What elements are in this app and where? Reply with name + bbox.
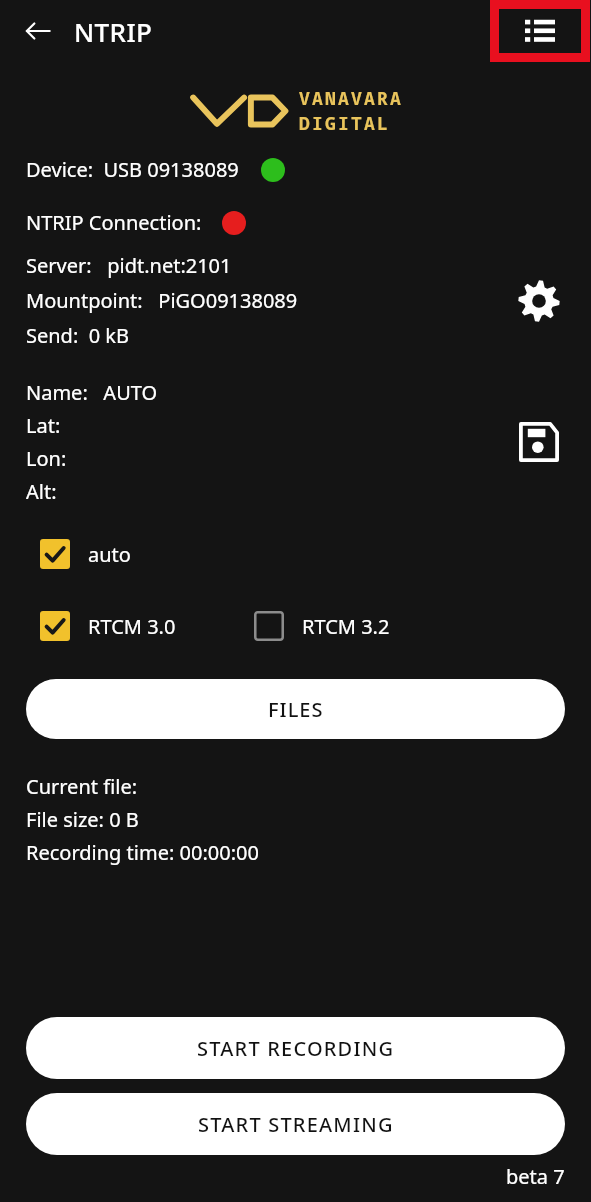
- button[interactable]: Save: [511, 414, 567, 470]
- button[interactable]: START STREAMING: [26, 1093, 565, 1155]
- button[interactable]: List menu: [490, 0, 590, 62]
- button[interactable]: RTCM 3.0: [40, 611, 176, 641]
- button[interactable]: START RECORDING: [26, 1017, 565, 1079]
- button[interactable]: Back: [14, 7, 62, 55]
- staticText: File size: 0 B: [26, 806, 139, 833]
- staticText: VANAVARA: [299, 86, 403, 111]
- staticText: Alt:: [26, 478, 57, 505]
- staticText: Lon:: [26, 445, 67, 472]
- button[interactable]: RTCM 3.2: [254, 611, 390, 641]
- staticText: Lat:: [26, 412, 61, 439]
- staticText: START RECORDING: [197, 1035, 395, 1062]
- button[interactable]: Settings: [511, 273, 567, 329]
- staticText: Current file:: [26, 773, 138, 800]
- staticText: FILES: [268, 696, 324, 723]
- staticText: RTCM 3.2: [302, 613, 390, 640]
- staticText: NTRIP Connection:: [26, 209, 202, 236]
- staticText: DIGITAL: [299, 111, 390, 136]
- staticText: Device: USB 09138089: [26, 156, 239, 183]
- staticText: RTCM 3.0: [88, 613, 176, 640]
- staticText: START STREAMING: [198, 1111, 394, 1138]
- button[interactable]: auto: [40, 539, 131, 569]
- staticText: Mountpoint: PiGO09138089: [26, 287, 298, 314]
- staticText: auto: [88, 541, 131, 568]
- staticText: Send: 0 kB: [26, 322, 129, 349]
- button[interactable]: FILES: [26, 679, 565, 739]
- staticText: NTRIP: [74, 14, 153, 49]
- staticText: Server: pidt.net:2101: [26, 252, 232, 279]
- staticText: Name: AUTO: [26, 379, 158, 406]
- staticText: Recording time: 00:00:00: [26, 839, 259, 866]
- staticText: beta 7: [506, 1163, 565, 1190]
